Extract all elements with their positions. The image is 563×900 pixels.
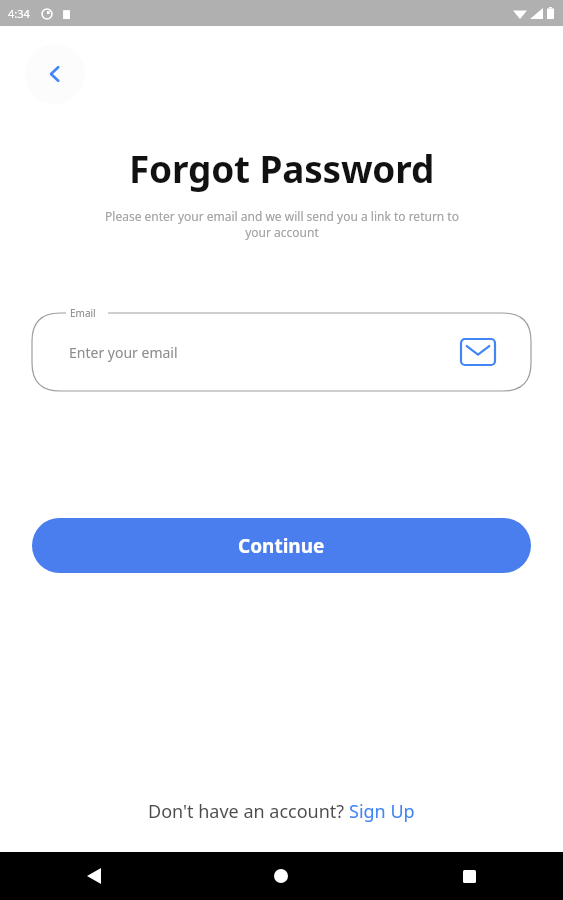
button[interactable]: Back [0,852,187,900]
button[interactable]: Continue [32,518,531,573]
staticText: Please enter your email and we will send… [96,208,468,241]
staticText: Don't have an account? [148,799,349,824]
staticText: Email [70,306,96,320]
button[interactable]: Home [187,852,375,900]
staticText: Enter your email [69,343,178,362]
staticText: 4:34 [8,6,30,21]
button[interactable]: Recents [375,852,563,900]
button[interactable]: Email [456,330,500,374]
staticText: Continue [238,533,325,559]
button[interactable]: Back [25,44,85,104]
staticText: Sign Up [349,799,415,824]
staticText: Forgot Password [129,143,435,193]
button[interactable]: Email [32,305,531,391]
button[interactable]: Sign Up [349,799,415,824]
